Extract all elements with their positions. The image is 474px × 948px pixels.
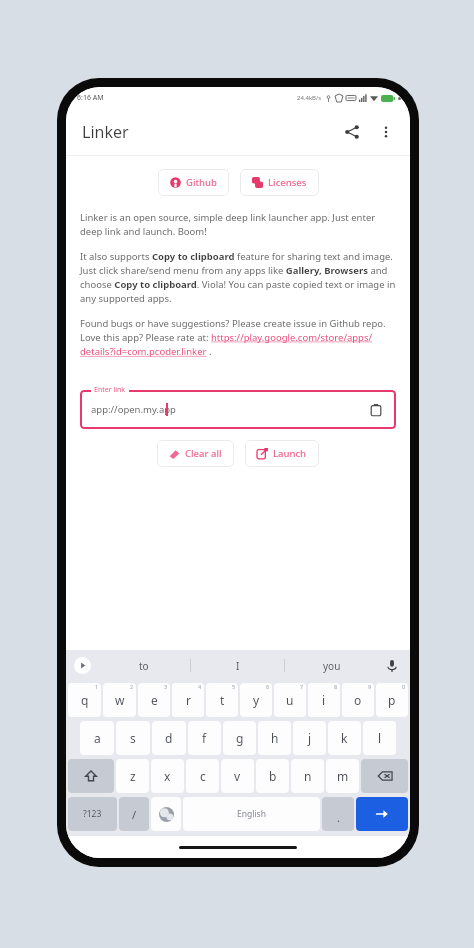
staticText: 1: [95, 683, 99, 690]
button[interactable]: Shift: [68, 759, 114, 793]
staticText: 8: [334, 683, 338, 690]
button[interactable]: Backspace: [361, 759, 408, 793]
staticText: k: [341, 730, 348, 746]
staticText: s: [130, 730, 136, 746]
staticText: n: [304, 768, 312, 784]
button[interactable]: g: [223, 721, 256, 755]
button[interactable]: app://open.my.app: [80, 390, 396, 429]
staticText: b: [269, 768, 277, 784]
button[interactable]: u: [274, 683, 306, 717]
staticText: 2: [130, 683, 134, 690]
button[interactable]: More options: [369, 115, 403, 149]
button[interactable]: y: [240, 683, 272, 717]
staticText: ?123: [83, 808, 102, 820]
button[interactable]: Launch: [245, 440, 319, 467]
button[interactable]: e: [138, 683, 170, 717]
staticText: o: [354, 692, 362, 708]
staticText: d: [165, 730, 173, 746]
button[interactable]: Clear all: [157, 440, 234, 467]
staticText: you: [323, 659, 341, 673]
staticText: 4: [198, 683, 202, 690]
button[interactable]: Go: [356, 797, 408, 831]
button[interactable]: k: [328, 721, 361, 755]
staticText: z: [130, 768, 136, 784]
staticText: x: [164, 768, 171, 784]
button[interactable]: s: [116, 721, 150, 755]
button[interactable]: Licenses: [240, 169, 319, 196]
button[interactable]: English: [183, 797, 320, 831]
staticText: Licenses: [268, 176, 307, 189]
staticText: 7: [300, 683, 304, 690]
staticText: l: [378, 730, 382, 746]
button[interactable]: ?123: [68, 797, 117, 831]
staticText: to: [139, 659, 149, 673]
button[interactable]: Paste from clipboard: [365, 399, 387, 421]
button[interactable]: o: [342, 683, 374, 717]
staticText: q: [81, 692, 89, 708]
button[interactable]: .: [322, 797, 354, 831]
staticText: a: [94, 730, 101, 746]
staticText: e: [151, 692, 158, 708]
button[interactable]: Emoji: [151, 797, 181, 831]
button[interactable]: I: [191, 650, 284, 681]
staticText: c: [200, 768, 206, 784]
staticText: Found bugs or have suggestions? Please c…: [80, 317, 396, 358]
button[interactable]: l: [363, 721, 396, 755]
button[interactable]: n: [291, 759, 324, 793]
button[interactable]: Share: [335, 115, 369, 149]
button[interactable]: r: [172, 683, 204, 717]
staticText: Linker: [82, 121, 129, 143]
staticText: v: [234, 768, 241, 784]
staticText: Clear all: [185, 447, 222, 460]
staticText: 6:16 AM: [77, 93, 104, 103]
button[interactable]: i: [308, 683, 340, 717]
staticText: 0: [402, 683, 406, 690]
staticText: I: [236, 659, 240, 673]
staticText: Linker is an open source, simple deep li…: [80, 211, 396, 238]
staticText: f: [202, 730, 207, 746]
button[interactable]: f: [188, 721, 221, 755]
button[interactable]: m: [326, 759, 359, 793]
button[interactable]: a: [80, 721, 114, 755]
button[interactable]: w: [103, 683, 136, 717]
button[interactable]: c: [186, 759, 219, 793]
staticText: 9: [368, 683, 372, 690]
staticText: /: [132, 807, 137, 822]
button[interactable]: /: [119, 797, 149, 831]
staticText: It also supports Copy to clipboard featu…: [80, 250, 396, 305]
staticText: j: [308, 730, 312, 746]
staticText: t: [220, 692, 225, 708]
button[interactable]: t: [206, 683, 238, 717]
staticText: h: [271, 730, 279, 746]
staticText: p: [388, 692, 396, 708]
button[interactable]: j: [293, 721, 326, 755]
staticText: 6: [266, 683, 270, 690]
staticText: w: [115, 692, 125, 708]
button[interactable]: you: [285, 650, 378, 681]
button[interactable]: b: [256, 759, 289, 793]
staticText: English: [237, 808, 266, 820]
staticText: .: [337, 810, 340, 825]
button[interactable]: z: [116, 759, 149, 793]
button[interactable]: Expand toolbar: [74, 657, 91, 674]
button[interactable]: q: [68, 683, 101, 717]
button[interactable]: p: [376, 683, 408, 717]
button[interactable]: x: [151, 759, 184, 793]
staticText: g: [236, 730, 244, 746]
button[interactable]: v: [221, 759, 254, 793]
staticText: r: [186, 692, 191, 708]
button[interactable]: Github: [158, 169, 229, 196]
button[interactable]: Voice input: [383, 657, 401, 675]
button[interactable]: h: [258, 721, 291, 755]
staticText: Enter link: [94, 385, 126, 395]
staticText: app://open.my.app: [91, 403, 176, 416]
staticText: 5: [232, 683, 236, 690]
button[interactable]: d: [152, 721, 186, 755]
staticText: m: [337, 768, 349, 784]
staticText: u: [286, 692, 294, 708]
button[interactable]: to: [98, 650, 190, 681]
staticText: 24.4kB/s: [297, 94, 322, 102]
staticText: 3: [164, 683, 168, 690]
staticText: i: [322, 692, 326, 708]
staticText: Launch: [273, 447, 307, 460]
